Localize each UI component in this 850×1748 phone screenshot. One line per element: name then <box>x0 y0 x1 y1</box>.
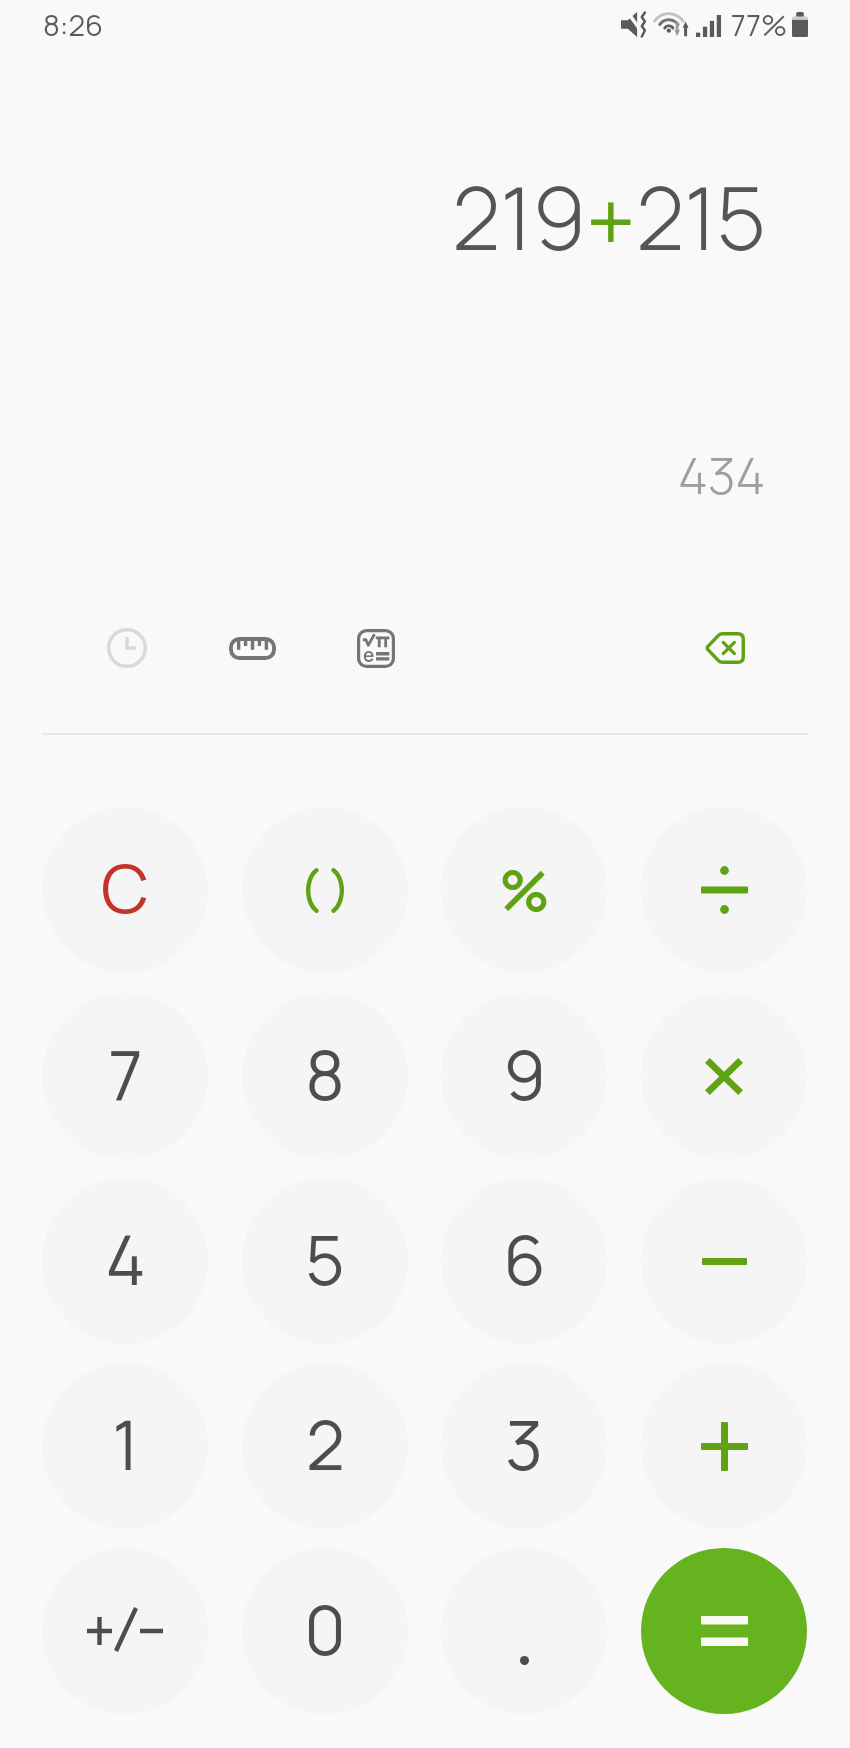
staticText: 7 <box>108 1028 143 1121</box>
button[interactable]: 1 <box>42 1363 208 1529</box>
button[interactable]: Unit converter <box>214 610 290 686</box>
button[interactable]: C <box>42 807 208 973</box>
staticText: 77% <box>731 5 788 45</box>
staticText: 434 <box>678 440 766 510</box>
button[interactable]: 3 <box>441 1363 607 1529</box>
staticText: 3 <box>505 1398 543 1491</box>
button[interactable]: 2 <box>242 1363 408 1529</box>
staticText: 8:26 <box>43 5 104 45</box>
button[interactable]: Parentheses <box>242 807 408 973</box>
button[interactable]: Decimal point <box>441 1548 607 1714</box>
staticText: 219 <box>452 158 586 275</box>
staticText: 4 <box>105 1213 146 1306</box>
staticText: e <box>363 642 375 668</box>
staticText: 6 <box>503 1213 546 1306</box>
button[interactable]: % <box>441 807 607 973</box>
button[interactable]: Minus <box>641 1178 807 1344</box>
staticText: 215 <box>636 158 766 275</box>
staticText: + <box>586 161 636 278</box>
button[interactable]: Multiply <box>641 993 807 1159</box>
button[interactable]: 6 <box>441 1178 607 1344</box>
button[interactable]: 4 <box>42 1178 208 1344</box>
button[interactable]: Scientific calculator <box>338 610 414 686</box>
staticText: 9 <box>503 1028 546 1121</box>
staticText: 5 <box>305 1213 345 1306</box>
button[interactable]: 9 <box>441 993 607 1159</box>
staticText: 1 <box>112 1398 139 1491</box>
button[interactable]: Divide <box>641 807 807 973</box>
staticText: 0 <box>304 1583 346 1676</box>
button[interactable]: 5 <box>242 1178 408 1344</box>
staticText: % <box>499 851 550 927</box>
button[interactable]: Plus <box>641 1363 807 1529</box>
button[interactable]: 0 <box>242 1548 408 1714</box>
button[interactable]: 7 <box>42 993 208 1159</box>
button[interactable]: Plus or minus <box>42 1548 208 1714</box>
button[interactable]: 8 <box>242 993 408 1159</box>
button[interactable]: Calculation history <box>89 610 165 686</box>
staticText: 2 <box>306 1398 345 1491</box>
button[interactable]: Backspace <box>686 610 762 686</box>
staticText: C <box>101 842 149 934</box>
staticText: 8 <box>305 1028 345 1121</box>
button[interactable]: Equals <box>641 1548 807 1714</box>
